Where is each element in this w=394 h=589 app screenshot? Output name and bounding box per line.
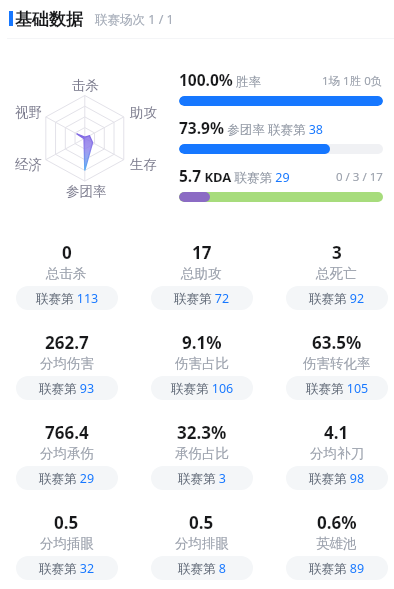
staticText: 63.5%	[312, 331, 362, 354]
button[interactable]: 73.9% 参团率 联赛第 38	[179, 117, 383, 154]
staticText: 联赛第 8	[178, 560, 226, 577]
staticText: 分均伤害	[40, 355, 94, 372]
button[interactable]: 0.6%	[269, 511, 394, 589]
staticText: 视野	[15, 104, 42, 121]
button[interactable]: 5.7 KDA 联赛第 29	[179, 165, 383, 202]
staticText: 伤害转化率	[303, 355, 371, 372]
staticText: 总助攻	[181, 265, 222, 282]
button[interactable]: 0.5	[134, 511, 269, 589]
staticText: 经济	[15, 156, 42, 173]
staticText: 联赛第 93	[39, 380, 95, 397]
staticText: 联赛场次 1 / 1	[95, 11, 174, 28]
staticText: 5.7 KDA 联赛第 29	[179, 165, 290, 186]
staticText: 助攻	[130, 104, 157, 121]
staticText: 分均插眼	[40, 535, 94, 552]
staticText: 分均补刀	[310, 445, 364, 462]
button[interactable]: 4.1	[269, 421, 394, 511]
staticText: 0.6%	[317, 511, 357, 534]
staticText: 联赛第 29	[39, 470, 95, 487]
staticText: 联赛第 89	[309, 560, 365, 577]
button[interactable]: 32.3%	[134, 421, 269, 511]
staticText: 0	[62, 241, 72, 264]
button[interactable]: 766.4	[0, 421, 134, 511]
staticText: 0.5	[189, 511, 214, 534]
staticText: 1场 1胜 0负	[322, 73, 383, 89]
staticText: 伤害占比	[175, 355, 229, 372]
staticText: 击杀	[72, 77, 99, 94]
staticText: 承伤占比	[175, 445, 229, 462]
staticText: 联赛第 72	[174, 290, 230, 307]
staticText: 总击杀	[46, 265, 87, 282]
staticText: 9.1%	[182, 331, 222, 354]
staticText: 联赛第 113	[36, 290, 99, 307]
staticText: 17	[192, 241, 212, 264]
button[interactable]: 100.0% 胜率	[179, 69, 383, 106]
button[interactable]: 3	[269, 241, 394, 331]
staticText: 联赛第 92	[309, 290, 365, 307]
staticText: 0 / 3 / 17	[336, 169, 383, 185]
staticText: 联赛第 105	[306, 380, 369, 397]
staticText: 参团率	[66, 183, 107, 200]
staticText: 联赛第 98	[309, 470, 365, 487]
staticText: 联赛第 32	[39, 560, 95, 577]
staticText: 英雄池	[316, 535, 357, 552]
staticText: 766.4	[45, 421, 89, 444]
staticText: 分均承伤	[40, 445, 94, 462]
staticText: 73.9% 参团率 联赛第 38	[179, 117, 323, 138]
button[interactable]: 262.7	[0, 331, 134, 421]
button[interactable]: 63.5%	[269, 331, 394, 421]
staticText: 4.1	[324, 421, 349, 444]
staticText: 32.3%	[177, 421, 227, 444]
staticText: 0.5	[54, 511, 79, 534]
button[interactable]: 0	[0, 241, 134, 331]
other: 能力雷达图	[0, 0, 394, 589]
button[interactable]: 0.5	[0, 511, 134, 589]
staticText: 生存	[130, 156, 157, 173]
staticText: 基础数据	[15, 9, 83, 30]
staticText: 分均排眼	[175, 535, 229, 552]
staticText: 联赛第 106	[171, 380, 234, 397]
button[interactable]: 9.1%	[134, 331, 269, 421]
staticText: 262.7	[45, 331, 89, 354]
staticText: 联赛第 3	[178, 470, 226, 487]
staticText: 100.0% 胜率	[179, 69, 262, 90]
button[interactable]: 17	[134, 241, 269, 331]
staticText: 总死亡	[316, 265, 357, 282]
staticText: 3	[332, 241, 342, 264]
